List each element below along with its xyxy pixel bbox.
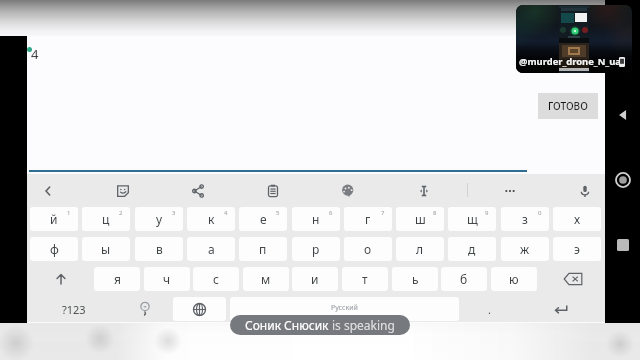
button[interactable]: Emoji [120, 297, 170, 321]
staticText: Русский [331, 303, 358, 313]
staticText: ы [101, 241, 111, 257]
button[interactable]: в [135, 237, 183, 261]
staticText: 5 [276, 209, 280, 217]
button[interactable]: е [239, 207, 287, 231]
button[interactable]: Text editing [410, 177, 438, 205]
staticText: ?123 [62, 302, 86, 317]
button[interactable]: ц [82, 207, 130, 231]
staticText: я [114, 271, 121, 287]
staticText: щ [467, 211, 478, 227]
button[interactable]: More options [496, 177, 524, 205]
button[interactable]: з [501, 207, 549, 231]
staticText: ь [412, 271, 419, 287]
button[interactable]: э [553, 237, 601, 261]
button[interactable]: щ [448, 207, 496, 231]
button[interactable]: и [292, 267, 338, 291]
button[interactable]: б [441, 267, 487, 291]
staticText: ж [520, 241, 530, 257]
button[interactable]: ы [82, 237, 130, 261]
button[interactable]: Home [606, 163, 640, 197]
button[interactable]: Back [606, 98, 640, 132]
button[interactable]: я [94, 267, 140, 291]
button[interactable]: п [239, 237, 287, 261]
staticText: о [364, 241, 372, 257]
button[interactable]: о [344, 237, 392, 261]
button[interactable]: а [187, 237, 235, 261]
staticText: у [156, 211, 163, 227]
button[interactable]: Symbols [30, 297, 118, 321]
button[interactable]: т [342, 267, 388, 291]
button[interactable]: Back [34, 177, 62, 205]
staticText: @murder_drone_N_ua [519, 55, 621, 68]
button[interactable]: ю [491, 267, 537, 291]
staticText: м [261, 271, 271, 287]
staticText: в [156, 241, 163, 257]
staticText: ц [102, 211, 110, 227]
staticText: ю [509, 271, 519, 287]
button[interactable]: ь [392, 267, 438, 291]
button[interactable]: Voice input [571, 177, 599, 205]
staticText: и [311, 271, 319, 287]
button[interactable]: Video preview [516, 5, 632, 73]
button[interactable]: ГОТОВО [538, 93, 598, 119]
staticText: 8 [433, 209, 437, 217]
staticText: к [208, 211, 215, 227]
button[interactable]: н [292, 207, 340, 231]
staticText: й [50, 211, 58, 227]
button[interactable]: м [243, 267, 289, 291]
button[interactable]: г [344, 207, 392, 231]
button[interactable]: х [553, 207, 601, 231]
staticText: е [260, 211, 267, 227]
staticText: г [365, 211, 371, 227]
staticText: 0 [538, 209, 542, 217]
button[interactable]: Change language [173, 297, 226, 321]
staticText: х [574, 211, 581, 227]
button[interactable]: Share [184, 177, 212, 205]
button[interactable]: с [193, 267, 239, 291]
staticText: н [312, 211, 320, 227]
button[interactable]: у [135, 207, 183, 231]
staticText: ч [163, 271, 171, 287]
staticText: 6 [329, 209, 333, 217]
staticText: с [213, 271, 219, 287]
button[interactable]: д [448, 237, 496, 261]
button[interactable]: Recent apps [606, 228, 640, 262]
button[interactable]: ч [144, 267, 190, 291]
button[interactable]: к [187, 207, 235, 231]
button[interactable]: й [30, 207, 78, 231]
button[interactable]: Clipboard [259, 177, 287, 205]
button[interactable]: Space [230, 297, 459, 321]
staticText: Соник Снюсик [245, 317, 332, 333]
staticText: п [259, 241, 267, 257]
staticText: 7 [381, 209, 385, 217]
staticText: а [208, 241, 215, 257]
staticText: 9 [485, 209, 489, 217]
staticText: ш [415, 211, 426, 227]
staticText: д [468, 241, 476, 257]
staticText: 3 [172, 209, 176, 217]
staticText: ф [50, 241, 59, 257]
button[interactable]: Stickers [109, 177, 137, 205]
staticText: . [488, 302, 491, 317]
button[interactable]: ш [396, 207, 444, 231]
staticText: 4 [224, 209, 228, 217]
button[interactable]: ж [501, 237, 549, 261]
staticText: 2 [119, 209, 123, 217]
staticText: э [574, 241, 580, 257]
staticText: б [460, 271, 468, 287]
button[interactable]: Shift [30, 267, 92, 291]
button[interactable]: Backspace [542, 267, 604, 291]
staticText: 1 [67, 209, 71, 217]
button[interactable]: Themes [334, 177, 362, 205]
staticText: 4 [31, 45, 39, 63]
staticText: ГОТОВО [548, 99, 588, 113]
staticText: т [362, 271, 368, 287]
button[interactable]: Period [462, 297, 516, 321]
button[interactable]: л [396, 237, 444, 261]
staticText: л [416, 241, 424, 257]
staticText: р [312, 241, 320, 257]
button[interactable]: ф [30, 237, 78, 261]
button[interactable]: Enter [518, 297, 604, 321]
staticText: з [522, 211, 528, 227]
button[interactable]: р [292, 237, 340, 261]
